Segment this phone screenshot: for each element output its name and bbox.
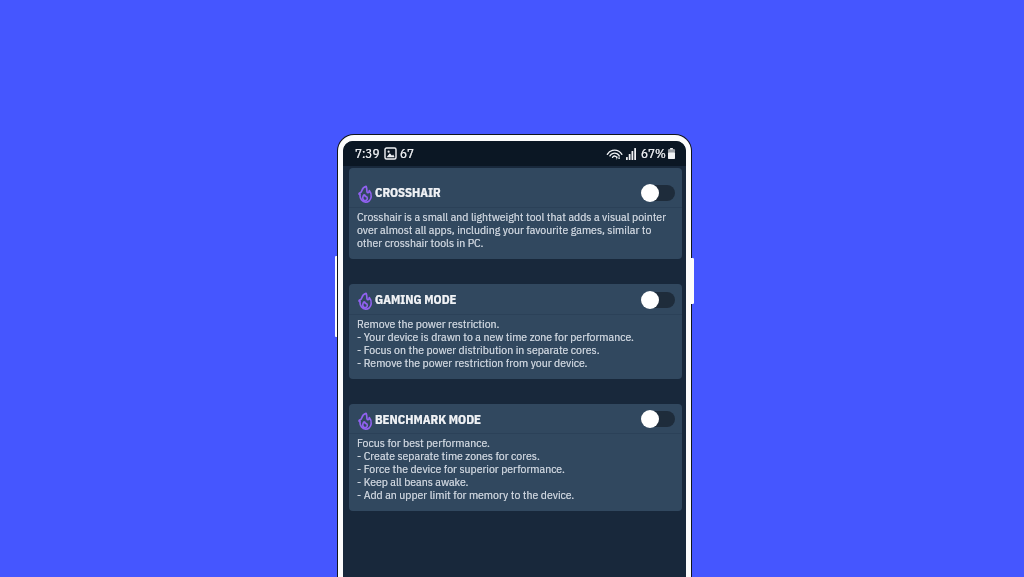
staticText: CROSSHAIR xyxy=(375,184,441,200)
staticText: Focus for best performance. - Create sep… xyxy=(357,437,575,502)
button[interactable]: GAMING MODE xyxy=(349,284,682,379)
staticText: 67 xyxy=(400,145,415,162)
staticText: 67% xyxy=(641,145,666,162)
button[interactable]: Toggle xyxy=(641,183,675,202)
staticText: 7:39 xyxy=(355,145,380,162)
button[interactable]: BENCHMARK MODE xyxy=(349,404,682,511)
button[interactable]: Toggle xyxy=(641,290,675,309)
button[interactable]: CROSSHAIR xyxy=(349,168,682,259)
staticText: Remove the power restriction. - Your dev… xyxy=(357,318,634,370)
button[interactable]: Toggle xyxy=(641,409,675,428)
staticText: Crosshair is a small and lightweight too… xyxy=(357,211,667,250)
staticText: BENCHMARK MODE xyxy=(375,411,481,427)
staticText: GAMING MODE xyxy=(375,291,457,307)
